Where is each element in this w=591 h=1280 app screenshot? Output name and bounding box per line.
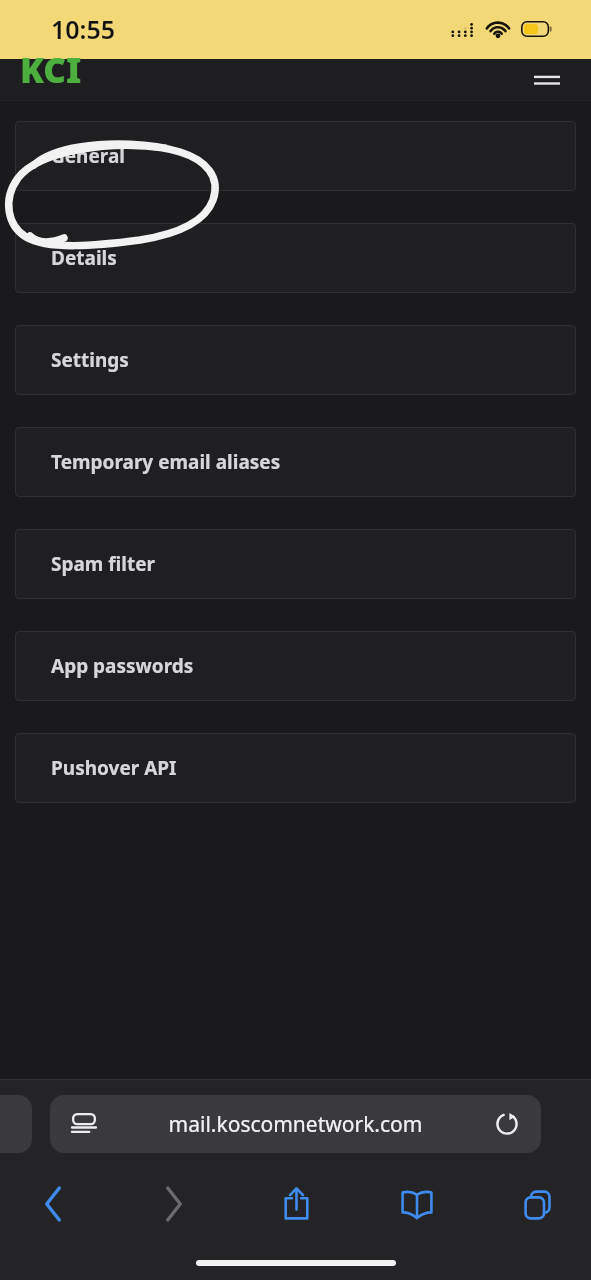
- button[interactable]: Tabs: [507, 1173, 569, 1235]
- staticText: Details: [51, 245, 117, 271]
- button[interactable]: Forward: [143, 1173, 205, 1235]
- staticText: 10:55: [51, 12, 116, 46]
- staticText: Pushover API: [51, 755, 177, 781]
- button[interactable]: Back: [22, 1173, 84, 1235]
- staticText: mail.koscomnetwork.com: [102, 1110, 489, 1139]
- button[interactable]: KCI home: [20, 46, 82, 88]
- button[interactable]: App passwords: [15, 631, 576, 701]
- button[interactable]: Spam filter: [15, 529, 576, 599]
- button[interactable]: Settings: [15, 325, 576, 395]
- button[interactable]: Bookmarks: [386, 1173, 448, 1235]
- staticText: KCI: [20, 46, 82, 88]
- button[interactable]: Open menu: [528, 61, 566, 99]
- button[interactable]: Share: [265, 1173, 327, 1235]
- button[interactable]: Pushover API: [15, 733, 576, 803]
- button[interactable]: Reload page: [489, 1106, 525, 1142]
- staticText: App passwords: [51, 653, 194, 679]
- staticText: Temporary email aliases: [51, 449, 281, 475]
- button[interactable]: Details: [15, 223, 576, 293]
- staticText: Spam filter: [51, 551, 156, 577]
- button[interactable]: Page settings: [50, 1095, 541, 1153]
- button[interactable]: General: [15, 121, 576, 191]
- staticText: Settings: [51, 347, 129, 373]
- button[interactable]: Page settings: [66, 1106, 102, 1142]
- staticText: General: [51, 143, 125, 169]
- button[interactable]: Temporary email aliases: [15, 427, 576, 497]
